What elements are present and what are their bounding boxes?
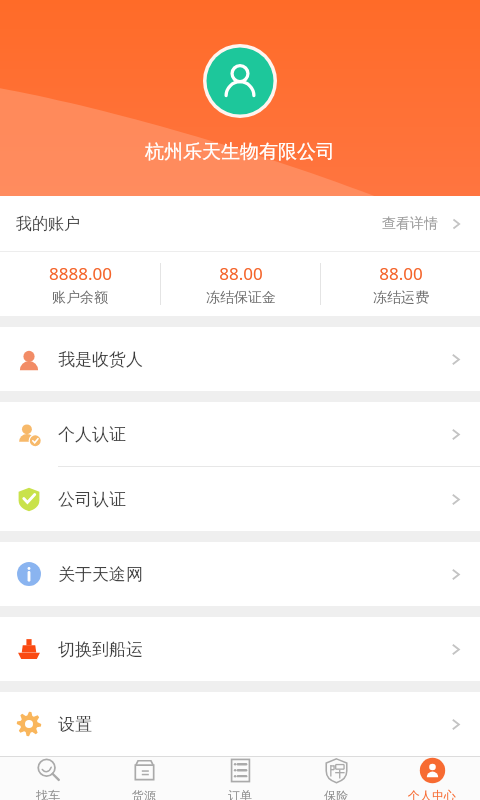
button[interactable]: 保险 (288, 757, 384, 800)
button[interactable]: 关于天途网 (0, 542, 480, 606)
staticText: 切换到船运 (58, 639, 143, 660)
staticText: 我是收货人 (58, 349, 143, 370)
button[interactable]: 设置 (0, 692, 480, 756)
staticText: 冻结保证金 (206, 289, 276, 307)
button[interactable]: 货源 (96, 757, 192, 800)
staticText: 关于天途网 (58, 564, 143, 585)
staticText: 账户余额 (52, 289, 108, 307)
staticText: 88.00 (219, 262, 263, 285)
staticText: 订单 (228, 788, 252, 800)
button[interactable]: 个人中心 (384, 757, 480, 800)
staticText: 查看详情 (382, 215, 438, 233)
staticText: 杭州乐天生物有限公司 (145, 140, 335, 164)
staticText: 个人认证 (58, 424, 126, 445)
staticText: 88.00 (379, 262, 423, 285)
button[interactable]: 个人认证 (0, 402, 480, 466)
button[interactable]: 公司认证 (0, 467, 480, 531)
staticText: 货源 (132, 788, 156, 800)
staticText: 我的账户 (16, 214, 80, 234)
staticText: 公司认证 (58, 489, 126, 510)
button[interactable]: 找车 (0, 757, 96, 800)
button[interactable]: 切换到船运 (0, 617, 480, 681)
staticText: 设置 (58, 714, 92, 735)
staticText: 找车 (36, 788, 60, 800)
staticText: 个人中心 (408, 788, 456, 800)
staticText: 冻结运费 (373, 289, 429, 307)
button[interactable]: 我是收货人 (0, 327, 480, 391)
staticText: 保险 (324, 788, 348, 800)
staticText: 8888.00 (49, 262, 112, 285)
button[interactable]: 订单 (192, 757, 288, 800)
button[interactable]: 我的账户 (0, 196, 480, 251)
